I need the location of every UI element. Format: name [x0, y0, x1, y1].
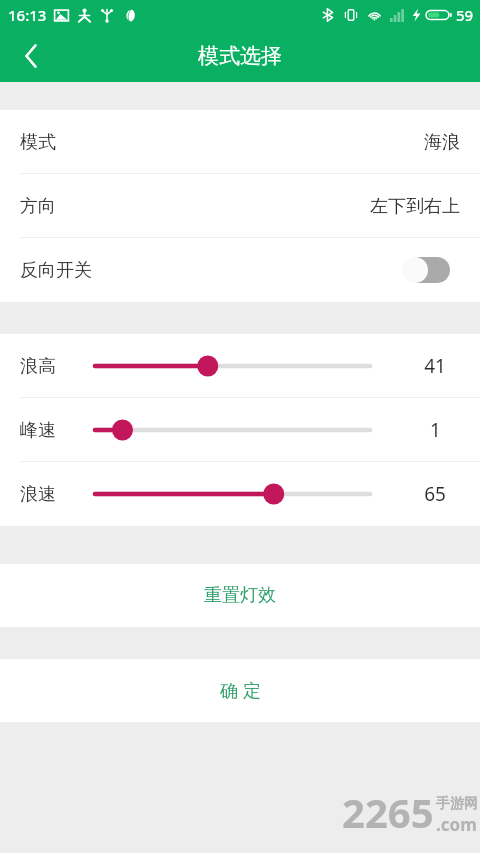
- staticText: 确 定: [220, 678, 261, 703]
- staticText: .com: [436, 813, 477, 836]
- staticText: 模式: [20, 131, 56, 154]
- button[interactable]: 确 定: [0, 659, 480, 722]
- button[interactable]: 峰速 slider: [75, 398, 390, 462]
- staticText: 反向开关: [20, 259, 92, 282]
- button[interactable]: 方向: [0, 174, 480, 238]
- staticText: 海浪: [424, 131, 460, 154]
- staticText: 2265: [342, 785, 434, 839]
- button[interactable]: 模式: [0, 110, 480, 174]
- staticText: 65: [424, 481, 446, 507]
- button[interactable]: 反向开关: [0, 238, 480, 302]
- staticText: 16:13: [8, 5, 47, 25]
- button[interactable]: Back: [0, 30, 62, 82]
- button[interactable]: 浪高 slider: [75, 334, 390, 398]
- staticText: 模式选择: [198, 43, 282, 69]
- staticText: 峰速: [20, 419, 56, 442]
- staticText: 左下到右上: [370, 195, 460, 218]
- staticText: 手游网: [436, 795, 478, 813]
- button[interactable]: 重置灯效: [0, 564, 480, 627]
- staticText: 41: [424, 353, 446, 379]
- staticText: 1: [430, 417, 441, 443]
- staticText: 浪速: [20, 483, 56, 506]
- button[interactable]: 浪速 slider: [75, 462, 390, 526]
- staticText: 59: [456, 5, 474, 25]
- staticText: 浪高: [20, 355, 56, 378]
- staticText: 重置灯效: [204, 584, 276, 607]
- staticText: 方向: [20, 195, 56, 218]
